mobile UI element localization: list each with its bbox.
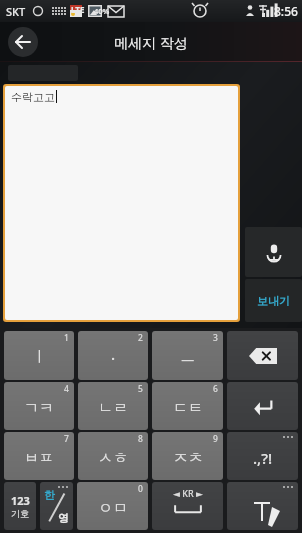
staticText: ㄴㄹ [98,399,128,418]
button[interactable]: 2 [78,331,148,380]
staticText: 2 [138,332,143,344]
button[interactable]: Enter [227,382,298,430]
staticText: .,?! [253,448,272,468]
staticText: · [111,348,116,368]
button[interactable]: Voice input [245,227,302,277]
button[interactable]: Space [152,482,223,530]
staticText: 123 [11,493,30,508]
staticText: ㅡ [180,348,195,367]
button[interactable]: Handwriting [227,482,298,530]
button[interactable]: 3 [152,331,223,380]
button[interactable]: 8 [78,432,148,480]
button[interactable]: 0 [77,482,148,530]
staticText: 8:56 [274,3,298,19]
staticText: 0 [138,483,143,495]
staticText: ㅅㅎ [98,449,128,468]
staticText: ㄷㅌ [173,399,203,418]
staticText: 수락고고 [11,90,55,104]
button[interactable]: 5 [78,382,148,430]
button[interactable]: 9 [152,432,223,480]
button[interactable]: 1 [4,331,74,380]
staticText: ㅣ [32,348,47,367]
staticText: ㅇㅁ [98,499,128,518]
button[interactable]: Korean/English [40,482,73,530]
staticText: 3 [213,332,218,344]
staticText: ㄱㅋ [24,399,54,418]
staticText: 영 [58,511,69,525]
button[interactable]: 수락고고 [5,86,238,320]
button[interactable]: 6 [152,382,223,430]
button[interactable]: 보내기 [245,279,302,322]
staticText: 9 [213,433,218,445]
staticText: ㅂㅍ [24,449,54,468]
staticText: LTE [71,4,85,15]
staticText: 보내기 [257,294,290,308]
staticText: 8 [138,433,143,445]
button[interactable]: Back [8,27,38,57]
staticText: 4 [64,383,69,395]
staticText: 6 [213,383,218,395]
staticText: 5 [138,383,143,395]
staticText: 7 [64,433,69,445]
staticText: SKT [6,4,26,19]
staticText: ㅈㅊ [173,449,203,468]
button[interactable]: Backspace [227,331,298,380]
button[interactable]: 4 [4,382,74,430]
button[interactable]: 7 [4,432,74,480]
staticText: 한 [44,488,55,502]
staticText: 메세지 작성 [114,33,188,52]
staticText: 40% [94,6,110,16]
button[interactable]: .,?! [227,432,298,480]
button[interactable]: 123 [4,482,36,530]
staticText: 기호 [11,508,29,519]
staticText: 1 [64,332,69,344]
staticText: ◄ KR ► [173,487,203,499]
